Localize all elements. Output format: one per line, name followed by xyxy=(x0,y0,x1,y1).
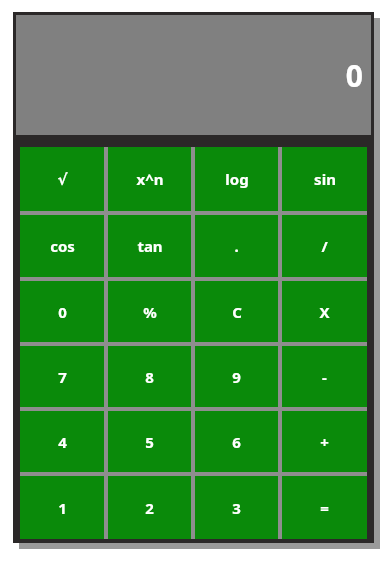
staticText: X xyxy=(319,302,330,322)
staticText: 9 xyxy=(232,367,241,387)
button[interactable]: cos xyxy=(20,215,104,277)
staticText: cos xyxy=(50,236,75,256)
staticText: 1 xyxy=(58,498,67,518)
staticText: % xyxy=(143,302,157,322)
staticText: tan xyxy=(137,236,163,256)
staticText: 5 xyxy=(145,432,154,452)
button[interactable]: 1 xyxy=(20,476,104,539)
button[interactable]: / xyxy=(282,215,367,277)
button[interactable]: 2 xyxy=(108,476,191,539)
staticText: 0 xyxy=(345,55,363,96)
button[interactable]: tan xyxy=(108,215,191,277)
button[interactable]: 5 xyxy=(108,411,191,472)
button[interactable]: % xyxy=(108,281,191,342)
staticText: 8 xyxy=(145,367,154,387)
staticText: sin xyxy=(314,169,336,189)
staticText: 7 xyxy=(58,367,67,387)
staticText: 2 xyxy=(145,498,154,518)
button[interactable]: 3 xyxy=(195,476,278,539)
button[interactable]: 4 xyxy=(20,411,104,472)
staticText: 4 xyxy=(58,432,67,452)
staticText: 3 xyxy=(232,498,241,518)
button[interactable]: 8 xyxy=(108,346,191,407)
button[interactable]: √ xyxy=(20,147,104,211)
button[interactable]: log xyxy=(195,147,278,211)
button[interactable]: 9 xyxy=(195,346,278,407)
staticText: - xyxy=(322,367,327,387)
button[interactable]: . xyxy=(195,215,278,277)
button[interactable]: 0 xyxy=(20,281,104,342)
staticText: / xyxy=(321,236,328,256)
button[interactable]: = xyxy=(282,476,367,539)
button[interactable]: sin xyxy=(282,147,367,211)
staticText: C xyxy=(232,302,242,322)
button[interactable]: - xyxy=(282,346,367,407)
button[interactable]: x^n xyxy=(108,147,191,211)
button[interactable]: 7 xyxy=(20,346,104,407)
button[interactable]: C xyxy=(195,281,278,342)
button[interactable]: X xyxy=(282,281,367,342)
button[interactable]: 6 xyxy=(195,411,278,472)
button[interactable]: + xyxy=(282,411,367,472)
staticText: x^n xyxy=(136,169,164,189)
staticText: √ xyxy=(57,171,68,188)
staticText: . xyxy=(234,236,239,256)
staticText: + xyxy=(320,432,329,452)
staticText: 0 xyxy=(58,302,67,322)
staticText: log xyxy=(225,169,249,189)
staticText: = xyxy=(320,498,329,518)
staticText: 6 xyxy=(232,432,241,452)
